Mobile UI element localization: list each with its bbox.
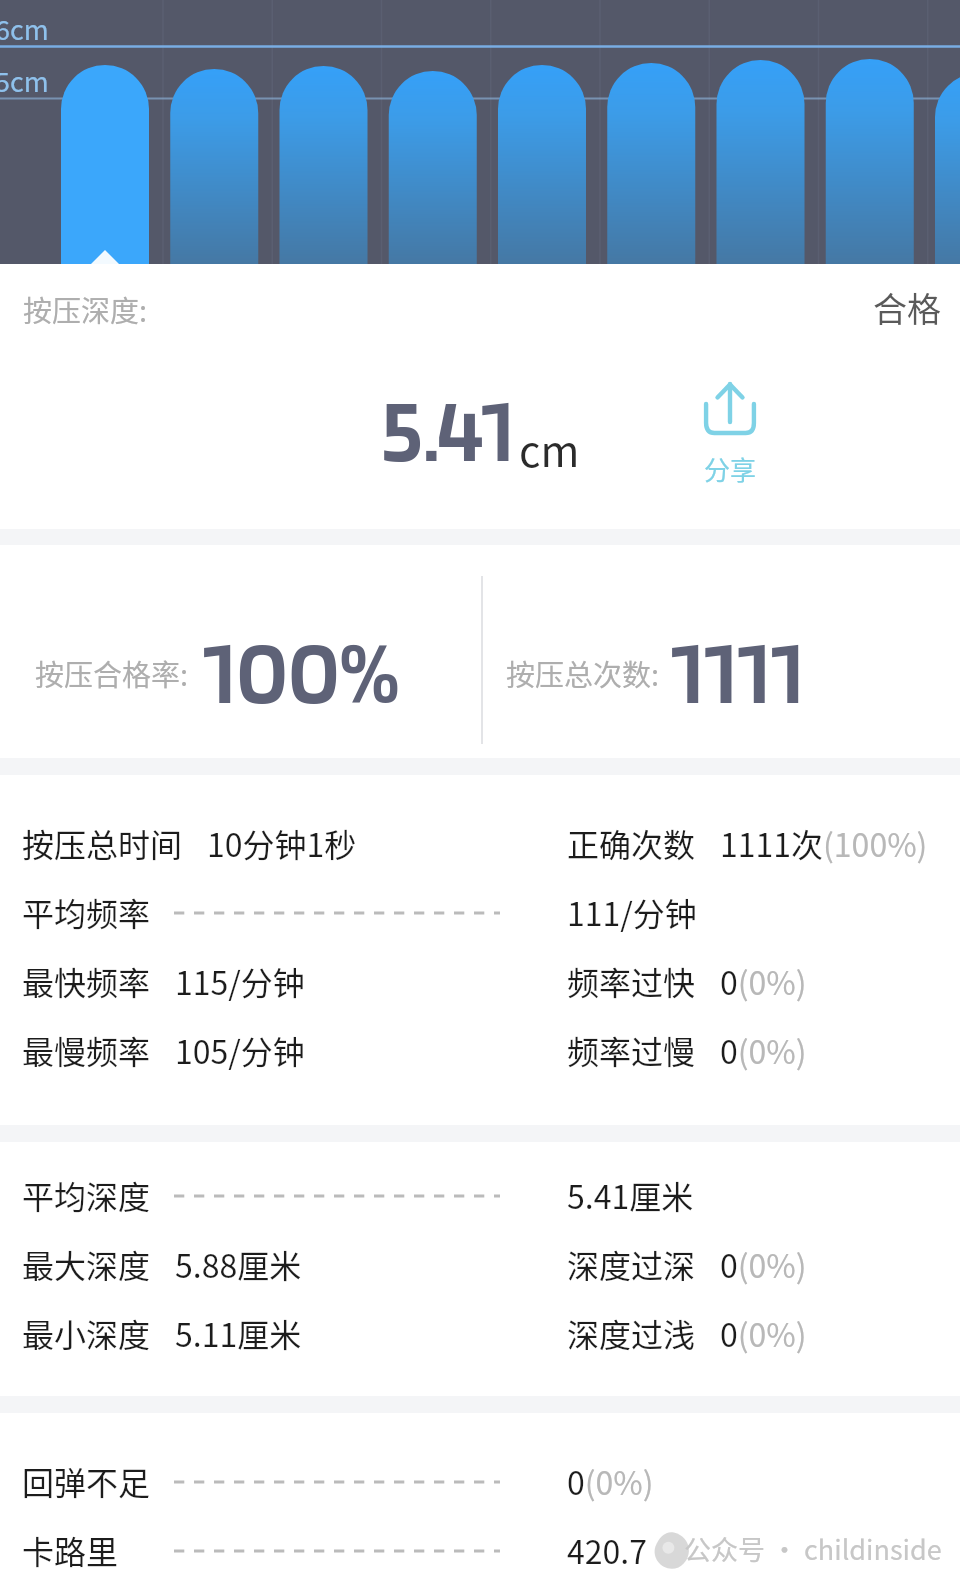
- staticText: 卡路里: [22, 1527, 119, 1573]
- staticText: cm: [519, 418, 580, 479]
- staticText: 公众号 · childinside: [684, 1529, 942, 1568]
- staticText: 1111: [671, 616, 805, 725]
- staticText: 0(0%): [720, 1310, 807, 1356]
- staticText: 1111次(100%): [720, 820, 928, 866]
- staticText: 420.7: [567, 1527, 647, 1573]
- staticText: 回弹不足: [22, 1458, 151, 1504]
- staticText: 合格: [873, 283, 941, 332]
- staticText: 按压总次数:: [506, 652, 660, 694]
- staticText: 最大深度: [22, 1241, 151, 1287]
- staticText: 10分钟1秒: [207, 820, 357, 866]
- staticText: 5.41: [381, 374, 515, 483]
- staticText: 按压深度:: [23, 288, 148, 330]
- staticText: 频率过慢: [567, 1027, 696, 1073]
- staticText: 115/分钟: [175, 958, 305, 1004]
- staticText: 105/分钟: [175, 1027, 305, 1073]
- staticText: 5.88厘米: [175, 1241, 302, 1287]
- button[interactable]: 分享: [687, 378, 773, 488]
- staticText: 0(0%): [720, 1241, 807, 1287]
- staticText: 最慢频率: [22, 1027, 151, 1073]
- staticText: 平均频率: [22, 889, 151, 935]
- staticText: 最小深度: [22, 1310, 151, 1356]
- staticText: 分享: [704, 450, 757, 488]
- staticText: 6cm: [0, 9, 49, 48]
- staticText: 111/分钟: [567, 889, 697, 935]
- staticText: 按压总时间: [22, 820, 183, 866]
- staticText: 100%: [203, 616, 400, 725]
- staticText: 正确次数: [567, 820, 696, 866]
- staticText: 5.41厘米: [567, 1172, 694, 1218]
- staticText: 按压合格率:: [35, 652, 189, 694]
- staticText: 深度过浅: [567, 1310, 696, 1356]
- staticText: 深度过深: [567, 1241, 696, 1287]
- staticText: 0(0%): [567, 1458, 654, 1504]
- staticText: 5.11厘米: [175, 1310, 302, 1356]
- staticText: 0(0%): [720, 1027, 807, 1073]
- staticText: 频率过快: [567, 958, 696, 1004]
- staticText: 0(0%): [720, 958, 807, 1004]
- staticText: 5cm: [0, 61, 49, 100]
- staticText: 最快频率: [22, 958, 151, 1004]
- staticText: 平均深度: [22, 1172, 151, 1218]
